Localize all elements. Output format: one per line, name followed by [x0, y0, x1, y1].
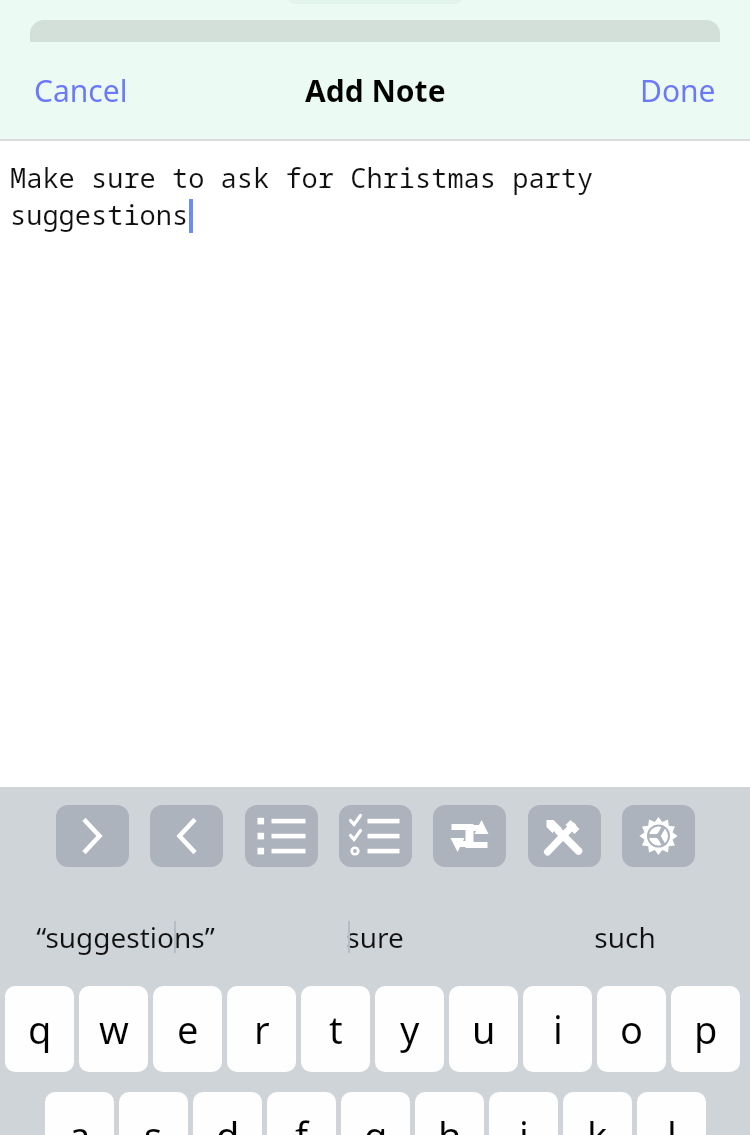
staticText: such: [594, 918, 656, 956]
staticText: sure: [346, 918, 404, 956]
staticText: o: [620, 1003, 643, 1055]
staticText: y: [400, 1003, 420, 1055]
staticText: Make sure to ask for Christmas party: [10, 159, 594, 196]
button[interactable]: r: [227, 986, 296, 1072]
button[interactable]: sure: [250, 906, 500, 968]
staticText: f: [295, 1109, 309, 1135]
button[interactable]: k: [563, 1092, 632, 1135]
button[interactable]: q: [5, 986, 74, 1072]
button[interactable]: Settings: [622, 805, 695, 867]
button[interactable]: e: [153, 986, 222, 1072]
staticText: p: [694, 1003, 718, 1055]
staticText: g: [364, 1109, 388, 1135]
button[interactable]: Bulleted list: [245, 805, 318, 867]
button[interactable]: s: [119, 1092, 188, 1135]
staticText: k: [587, 1109, 608, 1135]
button[interactable]: such: [500, 906, 750, 968]
button[interactable]: h: [415, 1092, 484, 1135]
staticText: u: [472, 1003, 496, 1055]
staticText: suggestions: [10, 196, 189, 233]
staticText: e: [177, 1003, 199, 1055]
button[interactable]: w: [79, 986, 148, 1072]
button[interactable]: u: [449, 986, 518, 1072]
button[interactable]: g: [341, 1092, 410, 1135]
button[interactable]: Next: [150, 805, 223, 867]
staticText: t: [329, 1003, 343, 1055]
button[interactable]: o: [597, 986, 666, 1072]
staticText: Add Note: [305, 70, 446, 111]
button[interactable]: Tools: [528, 805, 601, 867]
button[interactable]: Checklist: [339, 805, 412, 867]
staticText: a: [69, 1109, 91, 1135]
button[interactable]: y: [375, 986, 444, 1072]
button[interactable]: t: [301, 986, 370, 1072]
button[interactable]: Previous: [56, 805, 129, 867]
button[interactable]: Cancel: [14, 60, 148, 121]
staticText: h: [438, 1109, 462, 1135]
staticText: i: [553, 1003, 563, 1055]
staticText: q: [28, 1003, 52, 1055]
staticText: w: [99, 1003, 129, 1055]
staticText: “suggestions”: [36, 918, 215, 956]
button[interactable]: i: [523, 986, 592, 1072]
button[interactable]: l: [637, 1092, 706, 1135]
button[interactable]: f: [267, 1092, 336, 1135]
button[interactable]: Swap: [433, 805, 506, 867]
staticText: d: [216, 1109, 240, 1135]
staticText: l: [667, 1109, 677, 1135]
staticText: Done: [640, 70, 716, 111]
button[interactable]: “suggestions”: [0, 906, 250, 968]
button[interactable]: Done: [620, 60, 736, 121]
button[interactable]: d: [193, 1092, 262, 1135]
staticText: r: [254, 1003, 270, 1055]
staticText: s: [144, 1109, 163, 1135]
button[interactable]: Make sure to ask for Christmas party: [0, 141, 750, 787]
staticText: j: [519, 1109, 529, 1135]
button[interactable]: p: [671, 986, 740, 1072]
button[interactable]: a: [45, 1092, 114, 1135]
button[interactable]: j: [489, 1092, 558, 1135]
staticText: Cancel: [34, 70, 128, 111]
